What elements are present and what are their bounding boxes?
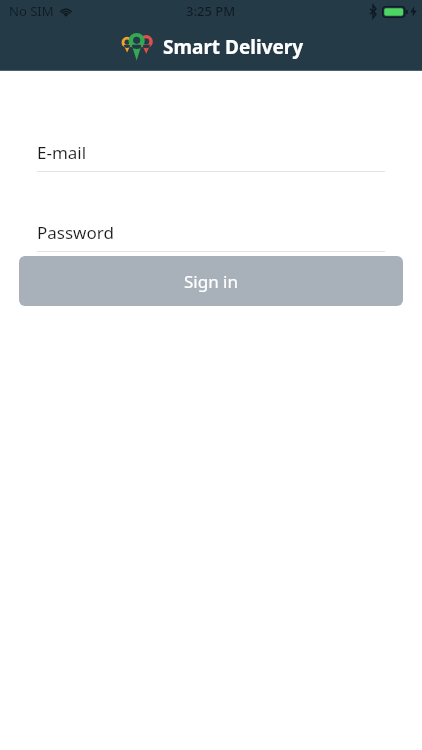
other: Smart Delivery logo	[119, 32, 155, 62]
staticText: 3:25 PM	[186, 2, 236, 20]
staticText: Sign in	[184, 270, 238, 293]
staticText: Smart Delivery	[163, 34, 304, 60]
button[interactable]: E-mail	[37, 134, 385, 171]
button[interactable]: Password	[37, 214, 385, 251]
other: Bluetooth	[369, 5, 377, 18]
staticText: Password	[37, 221, 114, 244]
other: Wi-Fi	[59, 5, 73, 16]
staticText: E-mail	[37, 141, 87, 164]
staticText: No SIM	[9, 2, 54, 20]
button[interactable]: Sign in	[19, 256, 403, 306]
other: Battery	[382, 6, 408, 18]
other: Charging	[410, 6, 417, 17]
